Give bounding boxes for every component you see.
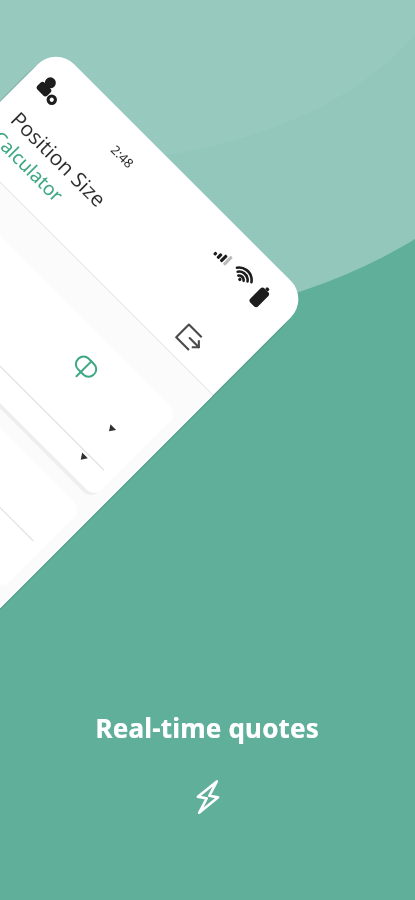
- button[interactable]: Real-time quotes onboarding page: [0, 0, 415, 900]
